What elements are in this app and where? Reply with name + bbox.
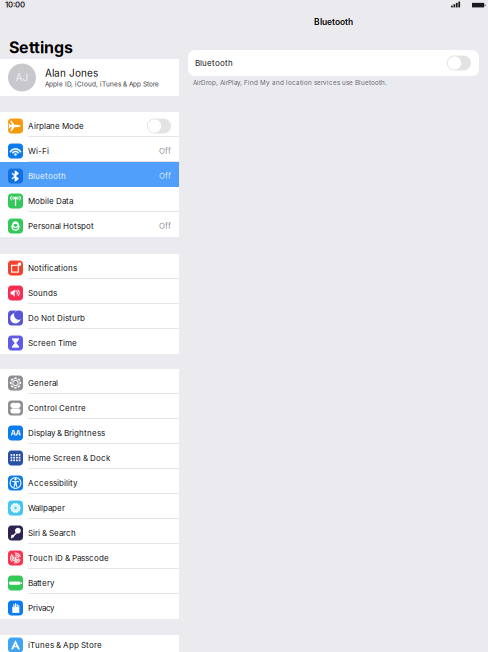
staticText: Mobile Data: [28, 196, 73, 206]
button[interactable]: iTunes & App Store: [0, 635, 179, 652]
staticText: iTunes & App Store: [28, 640, 102, 650]
staticText: Notifications: [28, 263, 77, 273]
staticText: General: [28, 378, 58, 388]
staticText: Siri & Search: [28, 528, 76, 538]
staticText: Off: [159, 221, 171, 231]
button[interactable]: Siri & Search: [0, 519, 179, 544]
staticText: Settings: [9, 38, 73, 57]
button[interactable]: Personal Hotspot: [0, 212, 179, 237]
staticText: Screen Time: [28, 338, 77, 348]
button[interactable]: Accessibility: [0, 469, 179, 494]
staticText: Touch ID & Passcode: [28, 553, 109, 563]
staticText: Off: [159, 171, 171, 181]
button[interactable]: Bluetooth: [0, 162, 179, 187]
staticText: Privacy: [28, 603, 54, 613]
staticText: Bluetooth: [314, 17, 353, 27]
staticText: Personal Hotspot: [28, 221, 94, 231]
staticText: AA: [10, 429, 20, 437]
staticText: Do Not Disturb: [28, 313, 85, 323]
staticText: Apple ID, iCloud, iTunes & App Store: [45, 80, 159, 88]
staticText: Wi-Fi: [28, 146, 49, 156]
button[interactable]: Privacy: [0, 594, 179, 619]
staticText: Home Screen & Dock: [28, 453, 110, 463]
staticText: Bluetooth: [28, 171, 66, 181]
staticText: Bluetooth: [195, 58, 233, 68]
button[interactable]: Do Not Disturb: [0, 304, 179, 329]
button[interactable]: General: [0, 369, 179, 394]
button[interactable]: AJ: [0, 59, 179, 96]
staticText: Battery: [28, 578, 54, 588]
button[interactable]: AA: [0, 419, 179, 444]
button[interactable]: Wi-Fi: [0, 137, 179, 162]
button[interactable]: Home Screen & Dock: [0, 444, 179, 469]
button[interactable]: Control Centre: [0, 394, 179, 419]
button[interactable]: Sounds: [0, 279, 179, 304]
button[interactable]: Notifications: [0, 254, 179, 279]
staticText: AJ: [15, 71, 28, 84]
button[interactable]: Wallpaper: [0, 494, 179, 519]
staticText: 10:00: [5, 0, 25, 9]
button[interactable]: Screen Time: [0, 329, 179, 354]
button[interactable]: Mobile Data: [0, 187, 179, 212]
staticText: Airplane Mode: [28, 121, 84, 131]
staticText: Control Centre: [28, 403, 86, 413]
staticText: AirDrop, AirPlay, Find My and location s…: [193, 79, 387, 87]
button[interactable]: Airplane Mode: [0, 112, 179, 137]
staticText: Display & Brightness: [28, 428, 105, 438]
staticText: Off: [159, 146, 171, 156]
button[interactable]: Battery: [0, 569, 179, 594]
button[interactable]: Touch ID & Passcode: [0, 544, 179, 569]
staticText: Accessibility: [28, 478, 77, 488]
staticText: Wallpaper: [28, 503, 65, 513]
staticText: Sounds: [28, 288, 57, 298]
staticText: Alan Jones: [45, 67, 98, 79]
